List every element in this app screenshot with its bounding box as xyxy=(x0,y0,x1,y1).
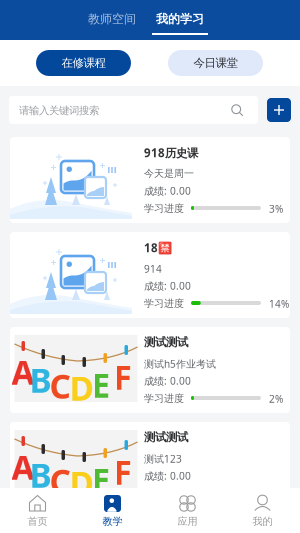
button[interactable]: 我的学习 xyxy=(152,8,208,38)
staticText: 今日课堂 xyxy=(193,56,237,70)
staticText: 教学 xyxy=(102,515,122,528)
button[interactable]: 今日课堂 xyxy=(168,50,263,76)
staticText: 我的学习 xyxy=(156,11,204,26)
staticText: C xyxy=(49,458,70,503)
staticText: 测试测试 xyxy=(144,430,188,444)
button[interactable]: 我的 xyxy=(225,488,300,533)
staticText: 教师空间 xyxy=(88,11,136,26)
staticText: B xyxy=(29,452,51,497)
staticText: 2% xyxy=(269,392,283,406)
staticText: 请输入关键词搜索 xyxy=(19,104,99,117)
staticText: 学习进度 xyxy=(144,487,184,500)
staticText: D xyxy=(69,460,93,505)
button[interactable]: 18🈲 xyxy=(10,232,290,318)
staticText: B xyxy=(29,357,51,402)
staticText: 测试h5作业考试 xyxy=(144,357,216,371)
staticText: 学习进度 xyxy=(144,297,184,310)
button[interactable]: Add course xyxy=(267,98,291,122)
staticText: 3% xyxy=(269,202,283,216)
staticText: 首页 xyxy=(27,515,47,528)
staticText: 学习进度 xyxy=(144,202,184,215)
button[interactable]: 在修课程 xyxy=(36,50,131,76)
staticText: 在修课程 xyxy=(61,56,105,70)
staticText: 成绩: 0.00 xyxy=(144,374,191,388)
staticText: 18🈲 xyxy=(144,240,172,256)
button[interactable]: A xyxy=(10,422,290,508)
staticText: 测试测试 xyxy=(144,335,188,349)
staticText: 成绩: 0.00 xyxy=(144,469,191,483)
button[interactable]: 教师空间 xyxy=(84,8,140,30)
staticText: 应用 xyxy=(177,515,197,528)
staticText: 14% xyxy=(269,297,289,311)
staticText: A xyxy=(11,444,34,489)
button[interactable]: 应用 xyxy=(150,488,225,533)
staticText: 918历史课 xyxy=(144,145,198,161)
button[interactable]: A xyxy=(10,327,290,413)
staticText: D xyxy=(69,365,93,410)
staticText: 成绩: 0.00 xyxy=(144,279,191,293)
button[interactable]: 教学 xyxy=(75,488,150,533)
button[interactable]: 918历史课 xyxy=(10,137,290,223)
staticText: 914 xyxy=(144,262,162,276)
staticText: F xyxy=(113,449,131,494)
staticText: E xyxy=(91,457,110,502)
staticText: 学习进度 xyxy=(144,392,184,405)
staticText: A xyxy=(11,349,34,394)
staticText: 成绩: 0.00 xyxy=(144,184,191,198)
staticText: C xyxy=(49,363,70,408)
staticText: 今天是周一 xyxy=(144,167,194,180)
button[interactable]: 首页 xyxy=(0,488,75,533)
staticText: E xyxy=(91,362,110,407)
staticText: 我的 xyxy=(252,515,272,528)
staticText: F xyxy=(113,354,131,399)
staticText: 测试123 xyxy=(144,452,182,466)
